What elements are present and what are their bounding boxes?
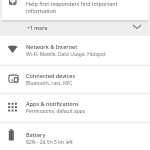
staticText: 82% - 2d 5h 51m left bbox=[26, 139, 73, 146]
staticText: Apps & notifications bbox=[26, 100, 79, 107]
button[interactable]: Connected devices bbox=[0, 65, 150, 94]
button[interactable] bbox=[0, 21, 150, 36]
staticText: Connected devices bbox=[26, 72, 76, 79]
button[interactable]: Apps & notifications bbox=[0, 93, 150, 122]
staticText: Bluetooth, cast, NFC bbox=[26, 80, 73, 87]
staticText: Battery bbox=[26, 131, 46, 138]
staticText: information bbox=[26, 7, 57, 14]
button[interactable]: Battery bbox=[0, 122, 150, 150]
staticText: +1 more bbox=[27, 24, 48, 31]
button[interactable] bbox=[2, 0, 148, 20]
staticText: Help first responders find important bbox=[26, 0, 118, 7]
button[interactable]: Network & Internet bbox=[0, 36, 150, 65]
staticText: Network & Internet bbox=[26, 43, 78, 50]
staticText: Wi-Fi, Mobile, Data Usage, Hotspot bbox=[26, 51, 106, 58]
staticText: Permissions, default apps bbox=[26, 108, 86, 115]
